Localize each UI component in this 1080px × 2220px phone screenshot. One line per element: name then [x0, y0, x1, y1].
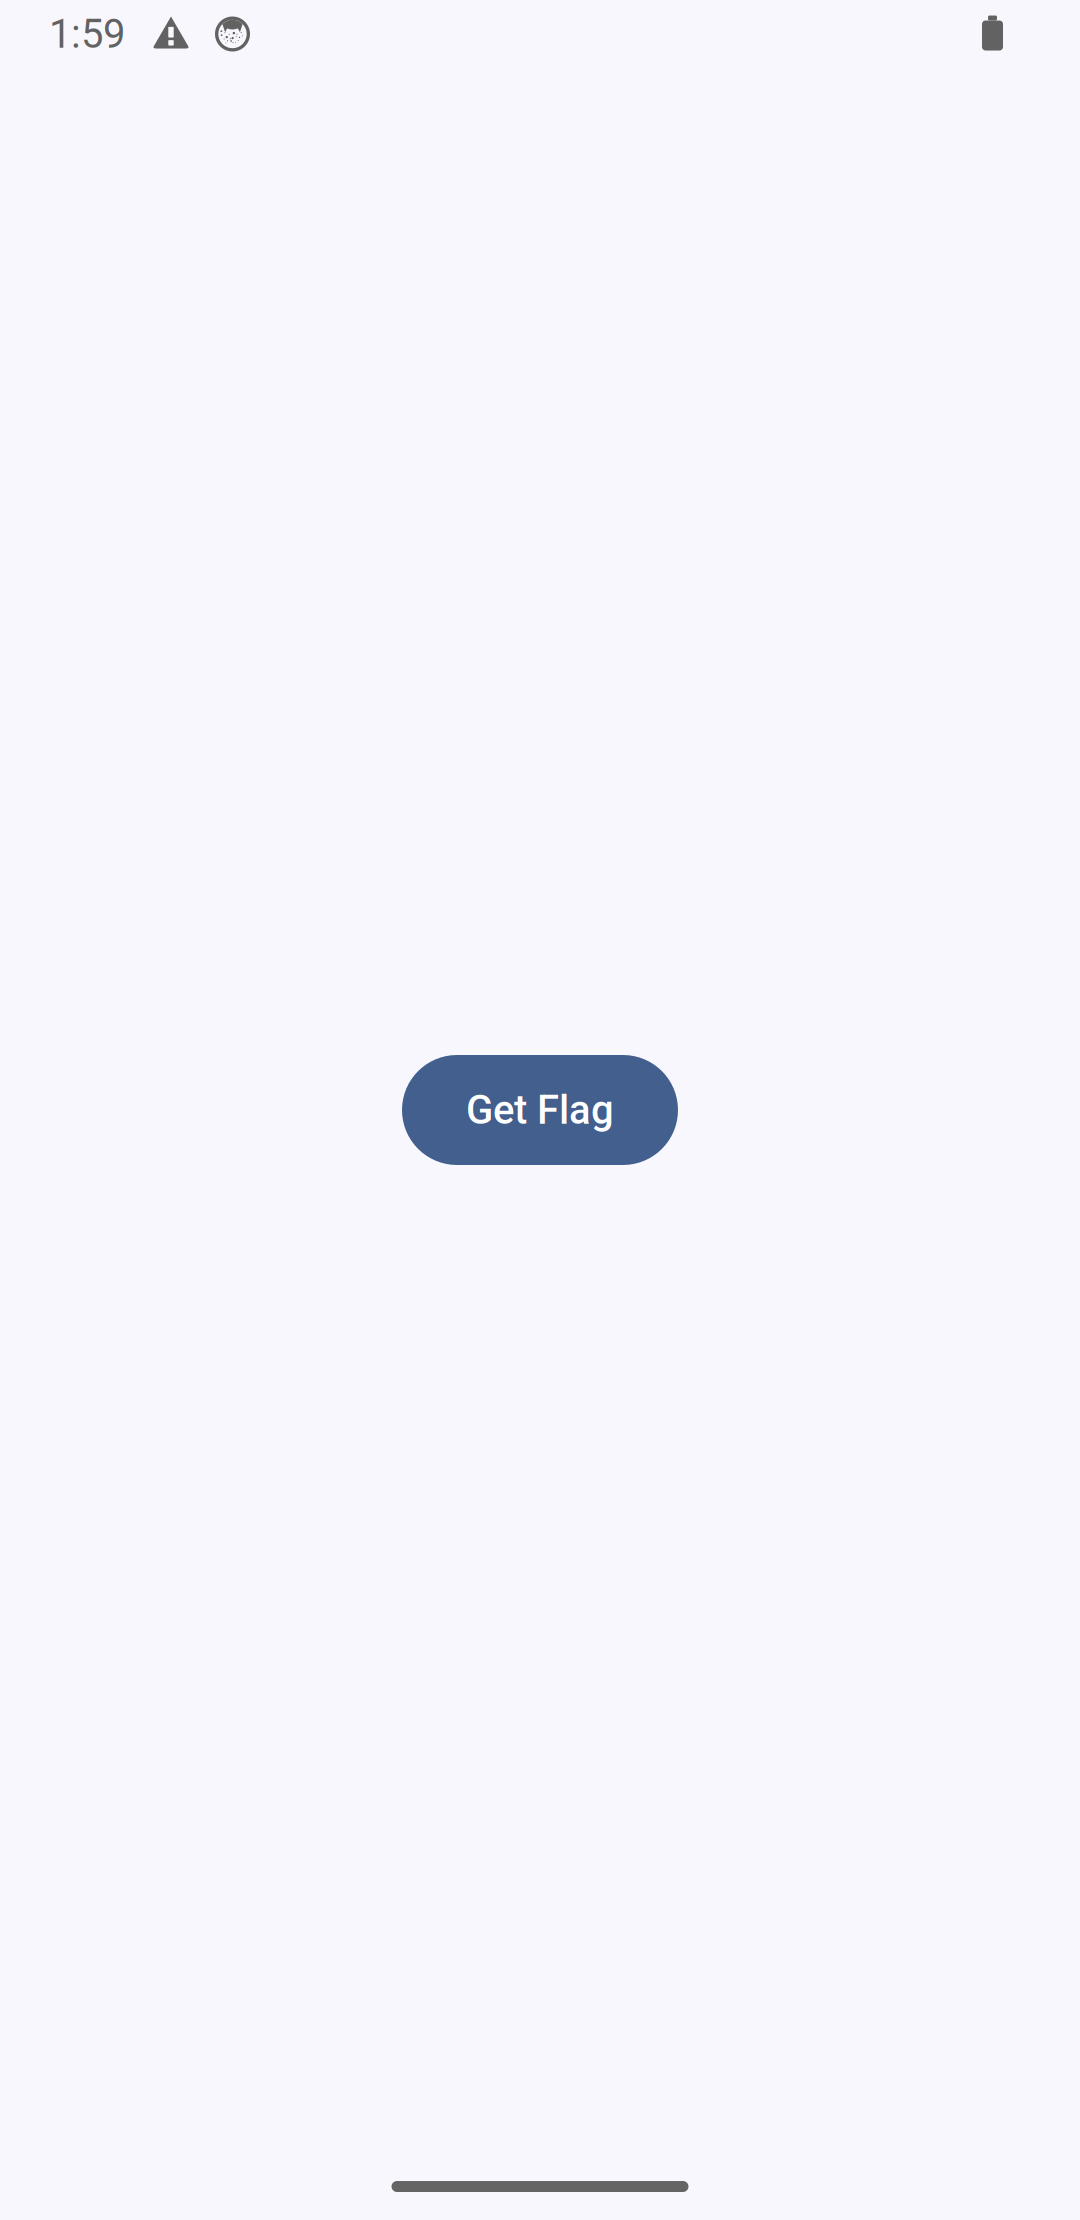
- button[interactable]: Get Flag: [402, 1055, 678, 1165]
- staticText: 1:59: [49, 11, 125, 57]
- staticText: Get Flag: [466, 1087, 614, 1133]
